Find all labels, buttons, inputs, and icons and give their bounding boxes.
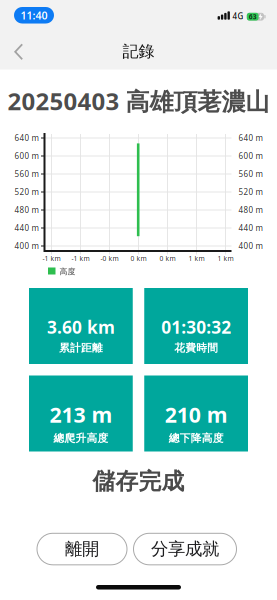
staticText: 640 m (14, 133, 38, 143)
button[interactable] (9, 42, 37, 61)
staticText: 11:40 (20, 8, 47, 22)
staticText: 520 m (14, 187, 38, 197)
staticText: 離開 (65, 538, 99, 560)
staticText: 210 m (165, 400, 228, 429)
button[interactable]: 離開 (37, 533, 127, 565)
staticText: -1 km (42, 254, 60, 263)
staticText: 640 m (238, 133, 262, 143)
staticText: 高度 (59, 267, 75, 276)
staticText: 600 m (14, 151, 38, 161)
staticText: -1 km (71, 254, 89, 263)
staticText: 儲存完成 (92, 468, 184, 495)
staticText: 1 km (188, 254, 204, 263)
staticText: 1 km (217, 254, 233, 263)
staticText: 總爬升高度 (53, 432, 108, 445)
staticText: 4G (232, 11, 243, 21)
staticText: 480 m (14, 205, 38, 215)
staticText: 520 m (238, 187, 262, 197)
staticText: -0 km (100, 254, 118, 263)
staticText: 480 m (238, 205, 262, 215)
staticText: 0 km (130, 254, 146, 263)
staticText: 213 m (49, 400, 112, 429)
staticText: 01:30:32 (161, 315, 231, 338)
staticText: 400 m (14, 241, 38, 251)
staticText: 累計距離 (59, 341, 103, 355)
staticText: 560 m (14, 169, 38, 179)
staticText: 總下降高度 (169, 432, 224, 445)
staticText: 3.60 km (47, 315, 115, 338)
staticText: 600 m (238, 151, 262, 161)
staticText: 440 m (238, 223, 262, 233)
staticText: 記錄 (122, 42, 154, 61)
button[interactable]: 分享成就 (133, 533, 236, 565)
staticText: 440 m (14, 223, 38, 233)
staticText: 560 m (238, 169, 262, 179)
staticText: 20250403 高雄頂荖濃山 (7, 85, 269, 117)
staticText: 400 m (238, 241, 262, 251)
staticText: 63 (249, 12, 257, 21)
staticText: 0 km (159, 254, 175, 263)
staticText: 花費時間 (174, 341, 218, 355)
staticText: 分享成就 (151, 538, 219, 560)
